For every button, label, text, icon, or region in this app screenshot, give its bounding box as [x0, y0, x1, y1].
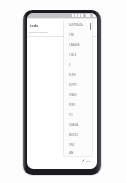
button[interactable]: CHILE	[64, 50, 92, 60]
button[interactable]: AUSTRALIA	[64, 20, 92, 30]
staticText: EGYPT	[69, 83, 77, 87]
staticText: Enter your code here	[29, 31, 48, 34]
button[interactable]: JAN	[64, 150, 92, 156]
staticText: TO	[69, 113, 73, 117]
staticText: E	[69, 63, 71, 67]
button[interactable]: E	[64, 60, 92, 70]
button[interactable]: Run	[80, 157, 93, 163]
button[interactable]: TO	[64, 110, 92, 120]
button[interactable]: MODEL	[64, 130, 92, 140]
button[interactable]: SPAIN	[64, 90, 92, 100]
button[interactable]: DRG	[64, 140, 92, 150]
button[interactable]: EGYPT	[64, 80, 92, 90]
staticText: PERU	[69, 103, 76, 107]
button[interactable]: PERU	[64, 100, 92, 110]
button[interactable]: CNY	[64, 30, 92, 40]
staticText: EURO	[69, 73, 76, 77]
button[interactable]: CANADA	[64, 40, 92, 50]
staticText: GHANA	[69, 123, 79, 127]
staticText: MODEL	[69, 133, 79, 137]
staticText: todo	[30, 23, 39, 28]
staticText: JAN	[69, 151, 74, 155]
button[interactable]: EURO	[64, 70, 92, 80]
staticText: CANADA	[69, 43, 80, 47]
staticText: SPAIN	[69, 93, 77, 97]
staticText: Run	[86, 159, 91, 162]
button[interactable]: GHANA	[64, 120, 92, 130]
staticText: DRG	[69, 143, 75, 147]
staticText: CHILE	[69, 53, 77, 57]
staticText: AUSTRALIA	[69, 23, 83, 27]
staticText: CNY	[69, 33, 75, 37]
